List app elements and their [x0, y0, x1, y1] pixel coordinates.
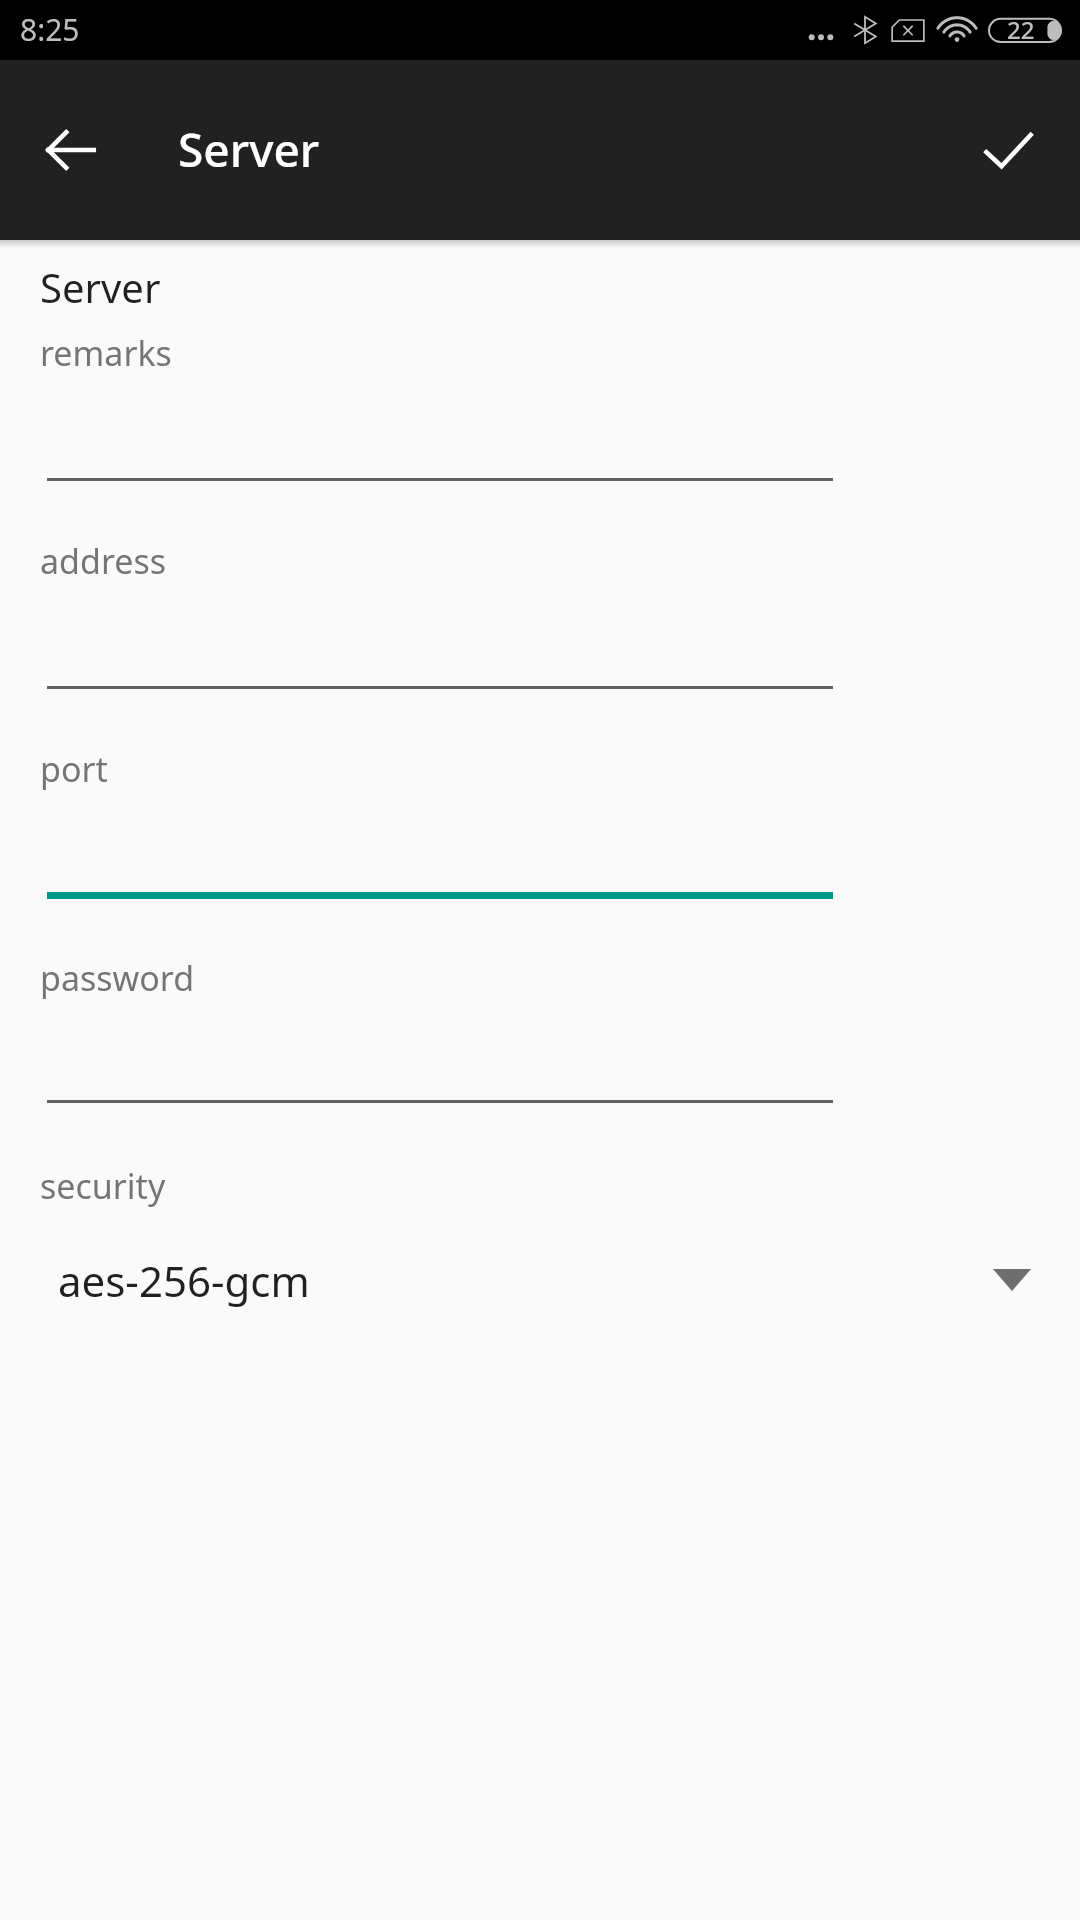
staticText: 8:25 — [20, 9, 80, 50]
staticText: 22 — [1007, 13, 1035, 46]
button[interactable]: address — [0, 528, 1080, 716]
button[interactable]: port — [0, 736, 1080, 922]
button[interactable]: Save — [960, 102, 1056, 198]
button[interactable]: Back — [22, 102, 118, 198]
button[interactable]: aes-256-gcm — [0, 1225, 1080, 1335]
staticText: password — [40, 955, 195, 1001]
staticText: port — [40, 746, 108, 792]
staticText: Server — [40, 260, 161, 314]
button[interactable]: password — [0, 945, 1080, 1130]
staticText: Server — [178, 118, 320, 181]
staticText: security — [40, 1163, 166, 1209]
staticText: remarks — [40, 330, 172, 376]
button[interactable]: remarks — [0, 320, 1080, 508]
staticText: aes-256-gcm — [58, 1252, 310, 1309]
staticText: address — [40, 538, 167, 584]
